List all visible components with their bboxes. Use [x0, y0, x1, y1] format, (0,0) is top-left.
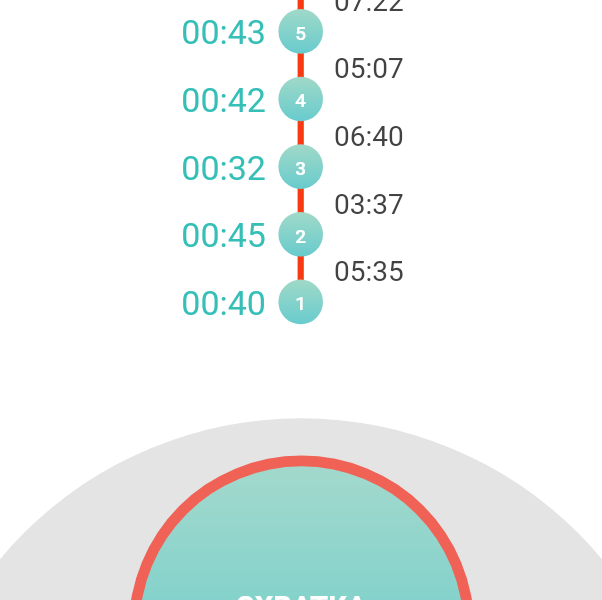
button[interactable]: Round 1: 00:40 rest, 05:35 round: [170, 268, 420, 336]
button[interactable]: Round 3: 00:32 rest, 06:40 round: [170, 133, 420, 201]
button[interactable]: Round 4: 00:42 rest, 05:07 round: [170, 65, 420, 133]
button[interactable]: СХВАТКА: [129, 456, 475, 600]
button[interactable]: Round 5: 00:43 rest, 07:22 round: [170, 0, 420, 66]
button[interactable]: Round 2: 00:45 rest, 03:37 round: [170, 201, 420, 269]
